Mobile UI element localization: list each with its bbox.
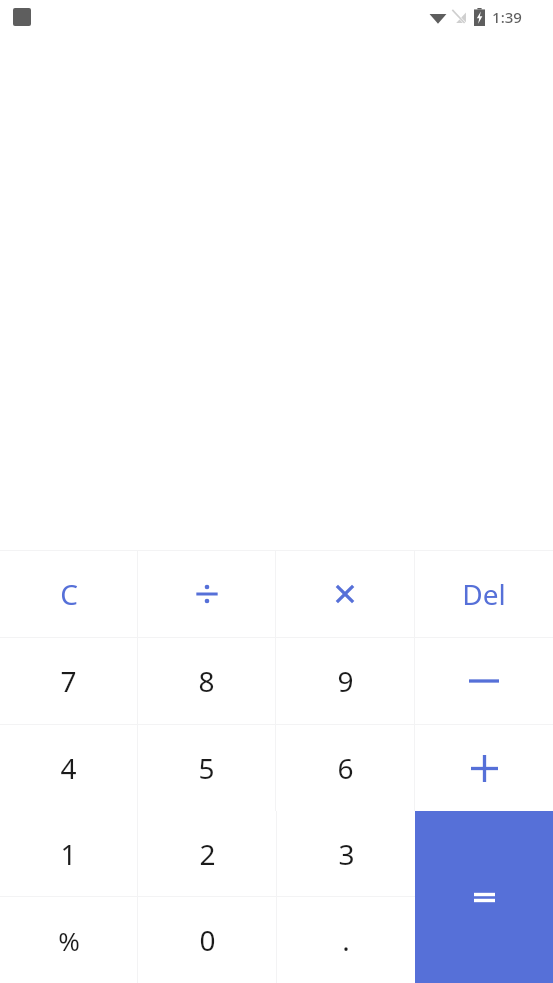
staticText: 3 [338, 835, 355, 873]
staticText: 0 [199, 921, 216, 959]
staticText: 8 [198, 662, 215, 700]
button[interactable]: Divide [138, 551, 275, 637]
button[interactable]: 3 [277, 811, 415, 896]
button[interactable]: 6 [276, 725, 414, 811]
staticText: 7 [60, 662, 77, 700]
button[interactable]: Delete [415, 551, 553, 637]
staticText: 1 [60, 835, 77, 873]
button[interactable]: 2 [138, 811, 276, 896]
staticText: 6 [337, 749, 354, 787]
button[interactable]: Equals [415, 811, 553, 983]
button[interactable]: 0 [138, 897, 276, 983]
button[interactable]: Clear [0, 551, 137, 637]
staticText: % [58, 923, 80, 958]
button[interactable]: 8 [138, 638, 275, 724]
button[interactable]: 1 [0, 811, 137, 896]
button[interactable]: 7 [0, 638, 137, 724]
staticText: C [60, 575, 78, 613]
button[interactable]: Plus [415, 725, 553, 811]
button[interactable]: Multiply [276, 551, 414, 637]
staticText: 2 [199, 835, 216, 873]
staticText: 5 [198, 749, 215, 787]
staticText: . [342, 921, 350, 959]
button[interactable]: Decimal point [277, 897, 415, 983]
staticText: Del [462, 575, 506, 613]
staticText: 1:39 [492, 7, 522, 27]
button[interactable]: Minus [415, 638, 553, 724]
button[interactable]: 9 [276, 638, 414, 724]
staticText: 9 [337, 662, 354, 700]
button[interactable]: Percent [0, 897, 137, 983]
button[interactable]: 5 [138, 725, 275, 811]
button[interactable]: 4 [0, 725, 137, 811]
staticText: 4 [60, 749, 77, 787]
